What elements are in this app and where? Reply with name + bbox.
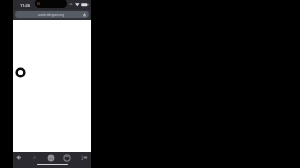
button[interactable]: a.web.telegram.org <box>15 11 89 18</box>
staticText: a.web.telegram.org <box>38 13 65 17</box>
staticText: 11:26 <box>20 3 30 8</box>
button[interactable]: Home <box>47 154 55 162</box>
other: Share <box>82 12 87 17</box>
button[interactable]: Tabs <box>63 154 71 162</box>
button[interactable]: Forward <box>31 154 38 161</box>
button[interactable]: More options <box>81 154 88 161</box>
button[interactable]: Back <box>15 154 22 161</box>
